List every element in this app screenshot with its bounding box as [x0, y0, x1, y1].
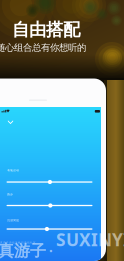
- button[interactable]: Collapse: [5, 117, 16, 127]
- staticText: 真游子游戏攻略与游戏社区: [0, 241, 36, 244]
- staticText: ·: [46, 242, 56, 260]
- staticText: 随心组合总有你想听的: [0, 42, 86, 53]
- staticText: 有氧运动: [7, 169, 19, 172]
- button[interactable]: 沉浸冥想: [6, 226, 92, 232]
- staticText: SUXINYI.: [56, 228, 124, 261]
- staticText: 沉浸冥想: [7, 219, 19, 222]
- staticText: 跑步: [7, 193, 13, 196]
- staticText: 自由搭配: [12, 19, 80, 40]
- button[interactable]: 有氧运动: [6, 179, 92, 185]
- button[interactable]: 跑步: [6, 202, 92, 208]
- staticText: 真游子: [0, 241, 46, 261]
